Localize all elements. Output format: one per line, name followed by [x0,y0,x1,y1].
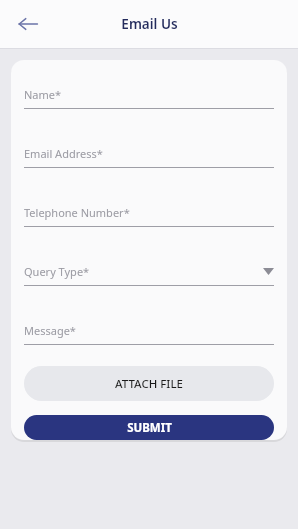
staticText: Email Address* [24,146,103,161]
staticText: Telephone Number* [24,205,130,220]
button[interactable]: SUBMIT [24,415,274,440]
staticText: Message* [24,323,76,338]
button[interactable]: Back [10,6,46,42]
button[interactable]: Telephone Number* [24,204,274,227]
staticText: Email Us [121,15,178,33]
staticText: SUBMIT [127,420,172,436]
staticText: Name* [24,87,62,102]
button[interactable]: Query Type* [24,263,274,286]
button[interactable]: Name* [24,86,274,109]
staticText: Query Type* [24,264,90,279]
button[interactable]: Email Address* [24,145,274,168]
button[interactable]: Message* [24,322,274,345]
button[interactable]: ATTACH FILE [24,366,274,401]
staticText: ATTACH FILE [115,376,183,392]
